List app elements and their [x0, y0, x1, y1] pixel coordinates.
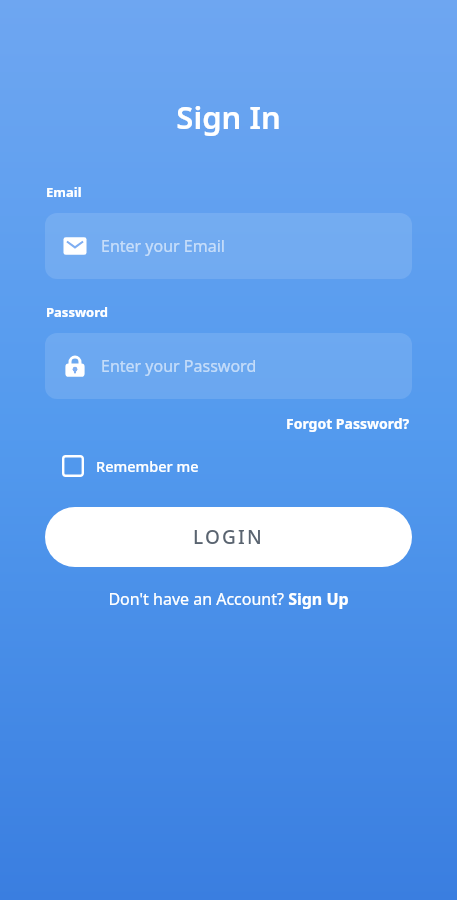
- button[interactable]: Don't have an Account? Sign Up: [104, 585, 353, 613]
- staticText: Enter your Password: [101, 355, 257, 377]
- button[interactable]: Remember me: [58, 451, 203, 481]
- other: Email: [63, 234, 87, 258]
- staticText: Password: [46, 303, 108, 321]
- staticText: Enter your Email: [101, 235, 225, 257]
- staticText: Sign In: [176, 96, 281, 138]
- button[interactable]: Forgot Password?: [284, 412, 412, 435]
- button[interactable]: Password: [45, 333, 412, 399]
- staticText: Email: [46, 183, 82, 201]
- staticText: Forgot Password?: [286, 414, 410, 433]
- button[interactable]: LOGIN: [45, 507, 412, 567]
- staticText: LOGIN: [193, 524, 264, 550]
- other: Password: [63, 354, 87, 378]
- staticText: Don't have an Account? Sign Up: [108, 588, 349, 610]
- staticText: Remember me: [96, 456, 199, 476]
- button[interactable]: Email: [45, 213, 412, 279]
